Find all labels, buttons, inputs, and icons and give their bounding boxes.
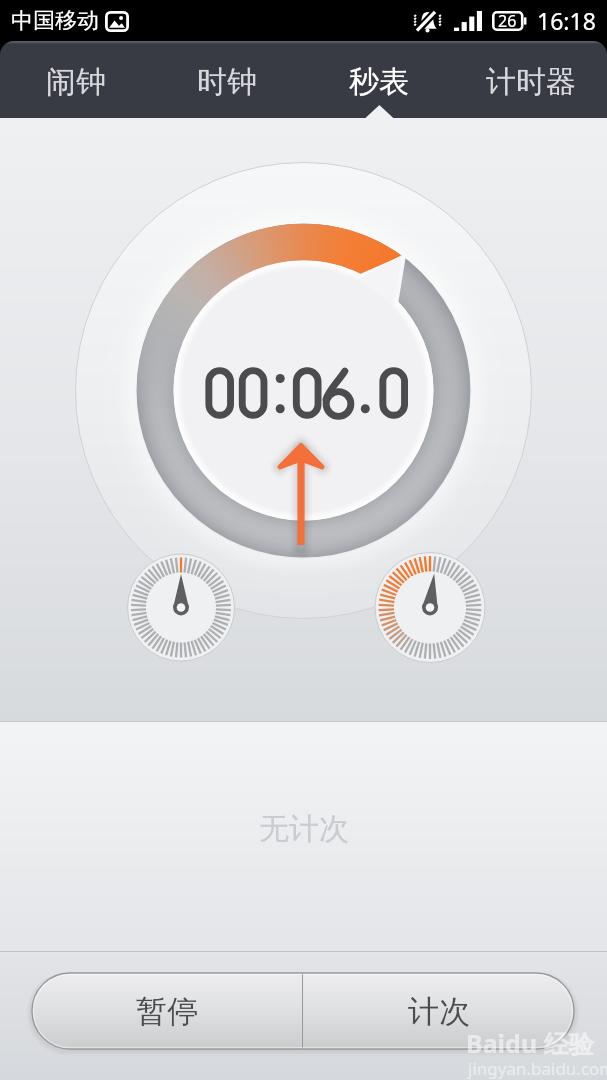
button[interactable]: 闹钟 [0, 41, 151, 118]
staticText: 秒表 [349, 63, 409, 101]
staticText: 计时器 [486, 63, 576, 101]
button[interactable]: 暂停 [32, 973, 302, 1049]
staticText: 无计次 [259, 810, 349, 848]
staticText: 26 [498, 10, 517, 32]
button[interactable]: 计时器 [455, 41, 607, 118]
staticText: jingyan.baidu.com [468, 1057, 607, 1080]
staticText: 时钟 [197, 63, 257, 101]
staticText: 闹钟 [46, 63, 106, 101]
button[interactable]: 秒表 [303, 41, 455, 118]
staticText: 中国移动 [11, 7, 99, 35]
staticText: 16:18 [537, 5, 596, 36]
staticText: Baidu 经验 [466, 1026, 594, 1060]
button[interactable]: 时钟 [151, 41, 303, 118]
staticText: 计次 [408, 992, 470, 1031]
button[interactable]: 计次 [303, 973, 574, 1049]
staticText: 暂停 [136, 992, 198, 1031]
